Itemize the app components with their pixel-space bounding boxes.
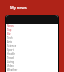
staticText: Science [7,44,17,48]
staticText: Weather [7,68,18,72]
staticText: Arts [7,40,12,44]
staticText: Tech [7,36,13,40]
staticText: Travel [7,56,15,60]
staticText: Video [7,64,14,68]
staticText: Living [7,60,15,64]
button[interactable]: News [6,24,58,28]
staticText: My news [10,5,27,10]
staticText: Biz [7,32,11,36]
button[interactable]: Science [6,44,58,48]
button[interactable]: Arts [6,40,58,44]
staticText: Sport [7,48,14,52]
button[interactable]: Travel [6,56,58,60]
button[interactable]: Top [6,28,58,32]
staticText: Top [7,28,12,32]
staticText: News [7,24,14,28]
button[interactable]: Weather [6,68,58,72]
button[interactable]: Biz [6,32,58,36]
staticText: Health [7,52,16,56]
button[interactable]: Health [6,52,58,56]
button[interactable]: Tech [6,36,58,40]
button[interactable]: Video [6,64,58,68]
button[interactable]: Living [6,60,58,64]
button[interactable]: Sport [6,48,58,52]
